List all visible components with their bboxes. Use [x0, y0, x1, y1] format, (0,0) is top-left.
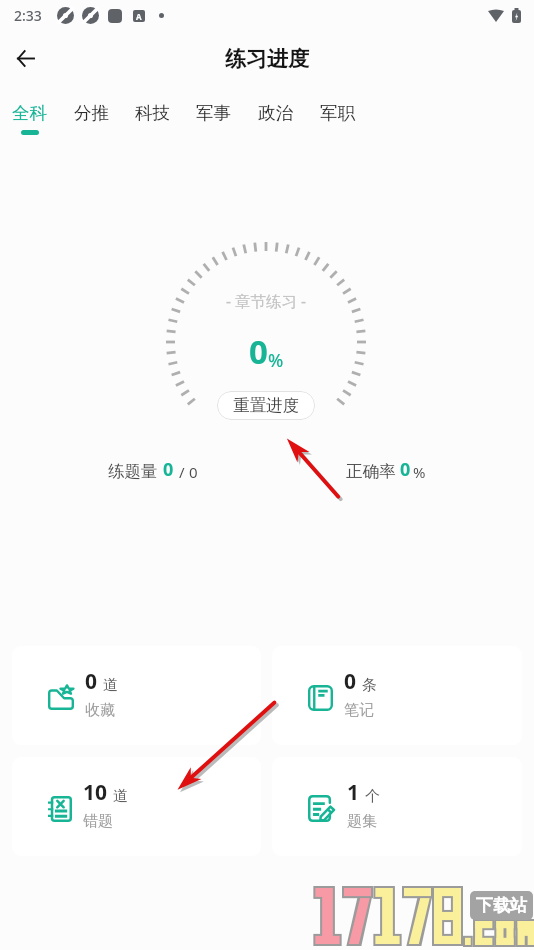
button[interactable]: 军职	[320, 102, 355, 144]
staticText: 0	[400, 457, 411, 482]
button[interactable]: 重置进度	[217, 391, 315, 420]
button[interactable]: Favorites	[12, 646, 261, 745]
staticText: 10	[83, 778, 108, 807]
staticText: 0	[85, 667, 98, 696]
staticText: - 章节练习 -	[226, 290, 307, 311]
staticText: 错题	[83, 812, 113, 831]
staticText: 练题量	[108, 461, 158, 482]
button[interactable]: Notes	[272, 646, 522, 745]
staticText: 条	[362, 676, 377, 695]
staticText: 个	[365, 787, 380, 806]
staticText: 1	[347, 778, 360, 807]
staticText: 题集	[347, 812, 377, 831]
button[interactable]: 政治	[258, 102, 293, 144]
staticText: %	[413, 462, 426, 482]
staticText: 0	[249, 329, 268, 374]
staticText: 道	[113, 787, 128, 806]
button[interactable]: Wrong answers	[12, 757, 261, 856]
staticText: 0	[344, 667, 357, 696]
staticText: 下载站	[476, 895, 527, 916]
staticText: 2:33	[14, 6, 42, 25]
staticText: 0	[189, 462, 198, 482]
staticText: 重置进度	[233, 395, 299, 416]
staticText: 练习进度	[225, 46, 309, 72]
staticText: 科技	[135, 102, 170, 124]
button[interactable]: 分推	[74, 102, 109, 144]
staticText: 政治	[258, 102, 293, 124]
staticText: 正确率	[346, 461, 396, 482]
staticText: 0	[163, 457, 174, 482]
staticText: 全科	[12, 102, 47, 124]
staticText: A	[136, 11, 142, 22]
button[interactable]: 科技	[135, 102, 170, 144]
staticText: /	[179, 462, 185, 482]
staticText: 分推	[74, 102, 109, 124]
staticText: 收藏	[85, 701, 115, 720]
staticText: 军职	[320, 102, 355, 124]
button[interactable]: 全科	[12, 102, 47, 144]
staticText: 笔记	[344, 701, 374, 720]
staticText: 道	[103, 676, 118, 695]
staticText: %	[268, 348, 284, 373]
button[interactable]: 军事	[196, 102, 231, 144]
staticText: 军事	[196, 102, 231, 124]
button[interactable]: Question sets	[272, 757, 522, 856]
button[interactable]: Back	[6, 39, 44, 77]
